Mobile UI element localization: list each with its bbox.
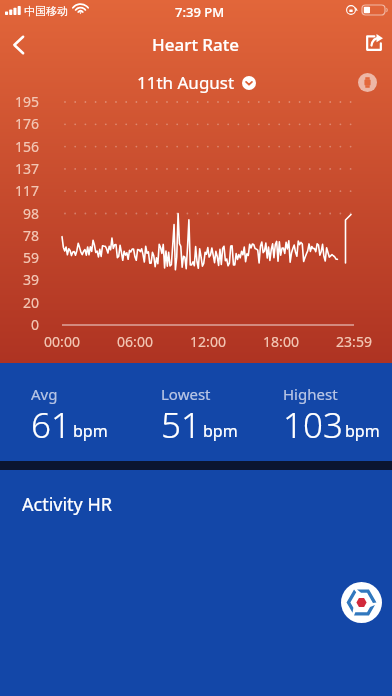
button[interactable]: Avg [31,384,108,452]
staticText: Activity HR [22,492,112,517]
staticText: Avg [31,384,58,404]
staticText: 137 [0,159,39,178]
staticText: Heart Rate [152,33,240,56]
staticText: 51 [161,401,201,449]
button[interactable]: Highest [283,384,380,452]
staticText: 11th August [137,71,235,94]
staticText: 00:00 [32,332,92,351]
staticText: Highest [283,384,338,404]
staticText: 59 [0,248,39,267]
button[interactable]: Back [0,24,44,68]
staticText: Lowest [161,384,211,404]
staticText: 06:00 [105,332,165,351]
staticText: 20 [0,293,39,312]
staticText: 12:00 [178,332,238,351]
staticText: 103 [283,401,343,449]
staticText: 7:39 PM [175,3,225,21]
staticText: 117 [0,181,39,200]
staticText: bpm [203,420,238,442]
button[interactable]: Watch device [358,73,377,92]
button[interactable]: Share [348,24,392,68]
staticText: 195 [0,92,39,111]
staticText: 23:59 [324,332,384,351]
staticText: 61 [31,401,71,449]
staticText: 18:00 [251,332,311,351]
staticText: 176 [0,114,39,133]
staticText: bpm [345,420,380,442]
staticText: 156 [0,137,39,156]
staticText: 78 [0,226,39,245]
staticText: 98 [0,204,39,223]
button[interactable]: Device logo [341,582,382,623]
staticText: 0 [0,315,39,334]
staticText: bpm [73,420,108,442]
button[interactable]: Lowest [161,384,238,452]
button[interactable]: 11th August [137,71,256,94]
staticText: 39 [0,270,39,289]
staticText: 中国移动 [24,4,68,18]
